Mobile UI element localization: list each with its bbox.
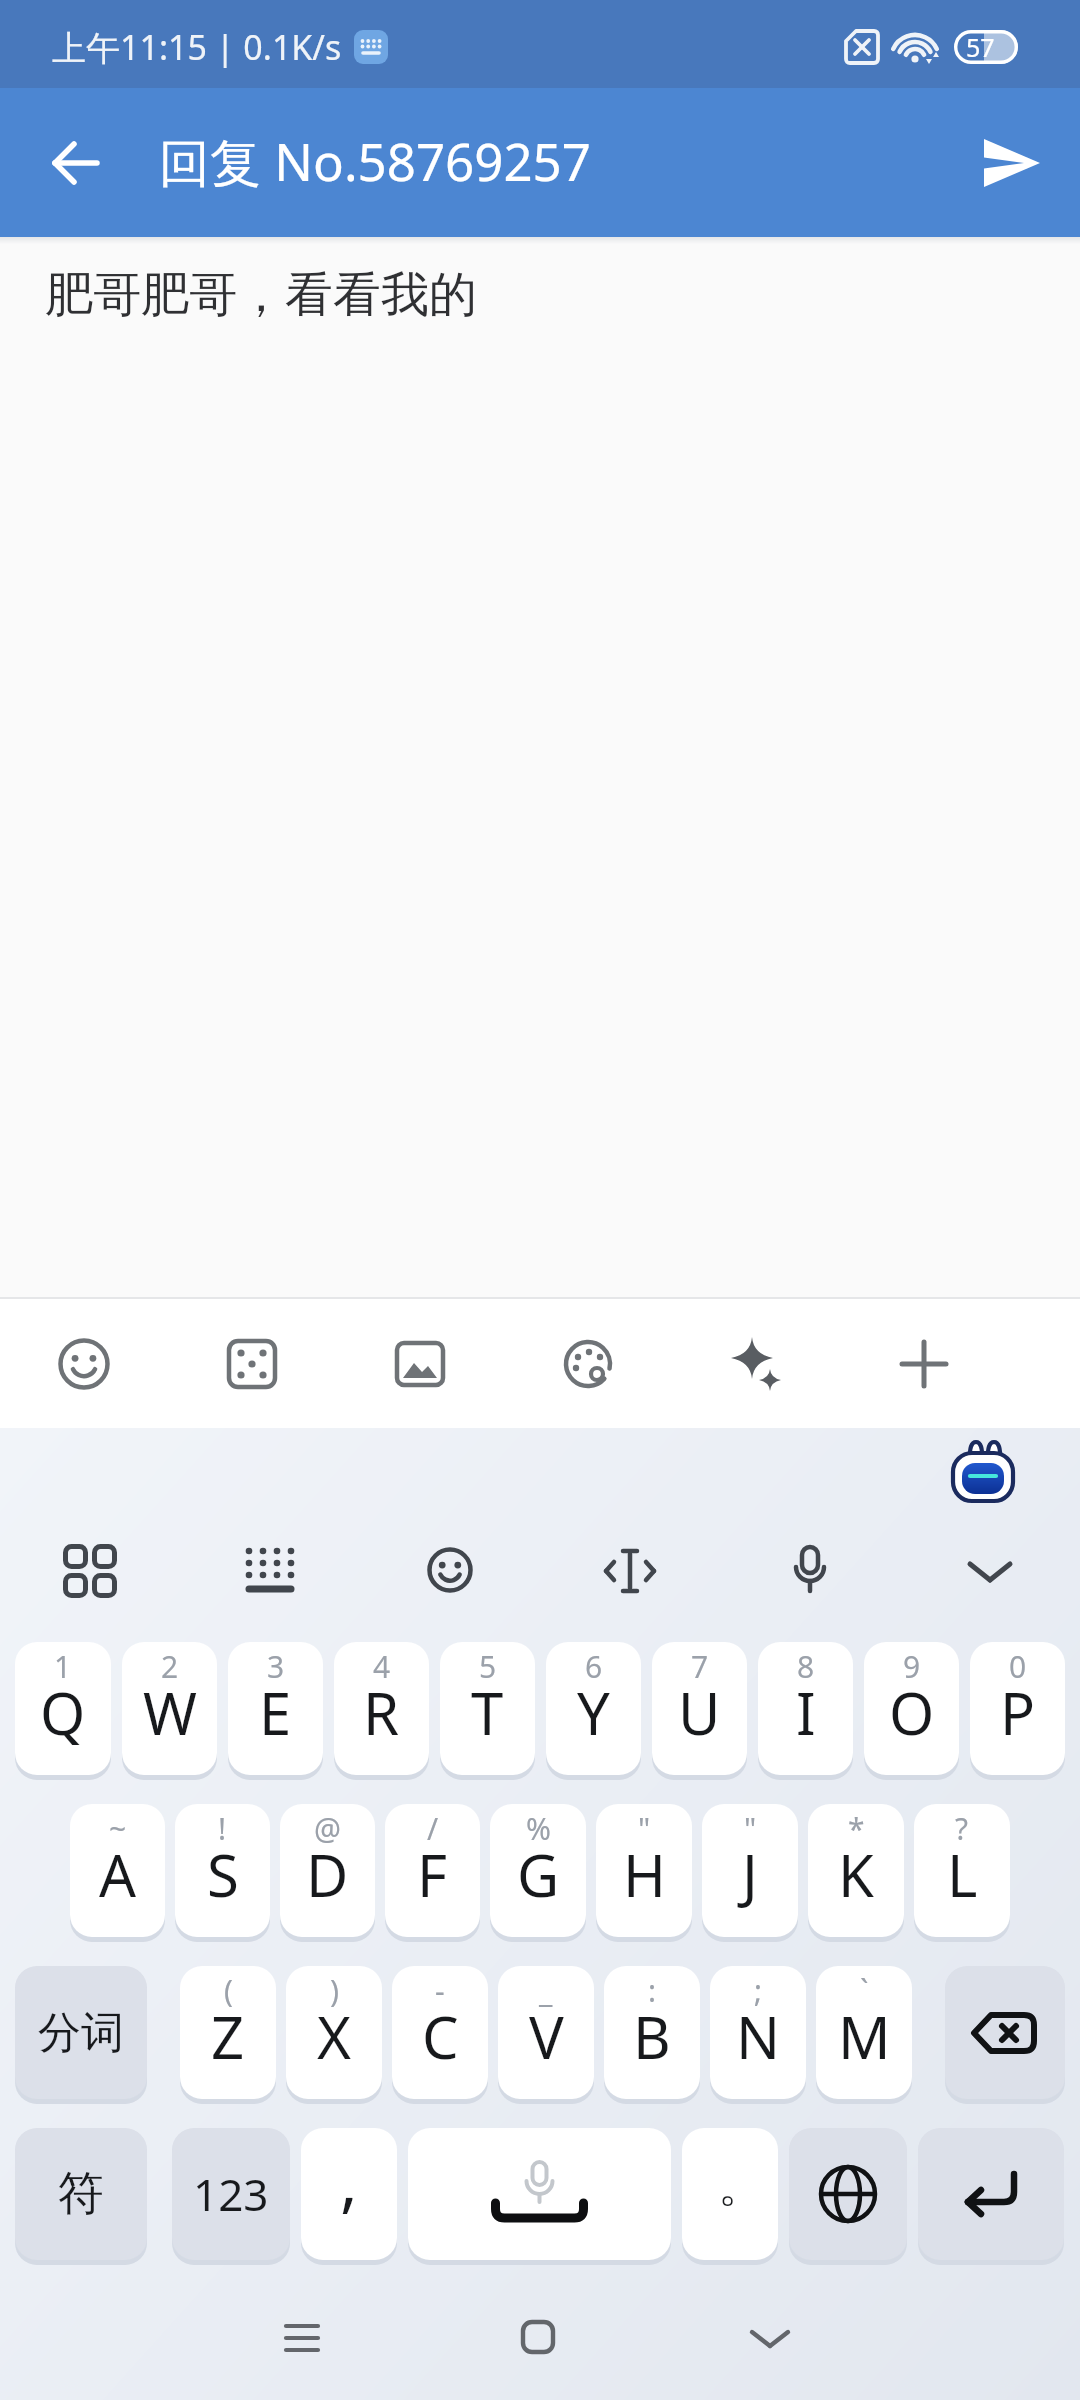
button[interactable]: / xyxy=(385,1804,480,1937)
staticText: X xyxy=(317,1997,351,2076)
staticText: A xyxy=(99,1835,137,1914)
staticText: : xyxy=(648,1970,657,2011)
staticText: P xyxy=(1000,1673,1036,1752)
button[interactable]: 7 xyxy=(652,1642,747,1775)
staticText: 5 xyxy=(479,1646,497,1687)
staticText: @ xyxy=(314,1808,341,1849)
button[interactable]: 123 xyxy=(172,2128,290,2260)
staticText: 。 xyxy=(718,2157,764,2215)
staticText: 7 xyxy=(691,1646,709,1687)
button[interactable]: ; xyxy=(710,1966,806,2099)
staticText: _ xyxy=(539,1970,553,2011)
staticText: 3 xyxy=(267,1646,285,1687)
button[interactable]: % xyxy=(490,1804,586,1937)
staticText: - xyxy=(435,1970,445,2011)
staticText: G xyxy=(517,1835,560,1914)
staticText: S xyxy=(207,1835,239,1914)
button[interactable]: ? xyxy=(914,1804,1010,1937)
button[interactable] xyxy=(918,2128,1064,2260)
button[interactable] xyxy=(789,2128,907,2260)
button[interactable]: - xyxy=(392,1966,488,2099)
button[interactable]: ( xyxy=(180,1966,276,2099)
button[interactable]: : xyxy=(604,1966,700,2099)
staticText: B xyxy=(633,1997,671,2076)
button[interactable]: 分词 xyxy=(15,1966,147,2099)
staticText: % xyxy=(526,1808,551,1849)
button[interactable]: @ xyxy=(280,1804,375,1937)
button[interactable] xyxy=(242,1545,298,1595)
button[interactable] xyxy=(602,1545,658,1595)
button[interactable]: 5 xyxy=(440,1642,535,1775)
staticText: R xyxy=(363,1673,400,1752)
staticText: 肥哥肥哥，看看我的 xyxy=(45,265,477,325)
button[interactable]: 1 xyxy=(15,1642,111,1775)
button[interactable] xyxy=(672,1299,840,1428)
staticText: 4 xyxy=(373,1646,391,1687)
staticText: O xyxy=(889,1673,935,1752)
staticText: E xyxy=(259,1673,292,1752)
button[interactable]: * xyxy=(808,1804,904,1937)
staticText: ) xyxy=(330,1970,339,2011)
staticText: ( xyxy=(224,1970,233,2011)
staticText: 57 xyxy=(966,30,995,64)
button[interactable]: 。 xyxy=(682,2128,778,2260)
staticText: ; xyxy=(754,1970,763,2011)
button[interactable]: ! xyxy=(175,1804,270,1937)
staticText: " xyxy=(744,1808,757,1849)
staticText: 6 xyxy=(585,1646,603,1687)
staticText: 分词 xyxy=(38,2006,124,2060)
button[interactable] xyxy=(62,1545,118,1595)
button[interactable] xyxy=(979,130,1045,196)
button[interactable] xyxy=(336,1299,504,1428)
staticText: K xyxy=(838,1835,874,1914)
staticText: 符 xyxy=(58,2165,104,2223)
button[interactable]: 9 xyxy=(864,1642,959,1775)
button[interactable] xyxy=(168,1299,336,1428)
staticText: Z xyxy=(211,1997,245,2076)
button[interactable]: ) xyxy=(286,1966,382,2099)
button[interactable] xyxy=(782,1545,838,1595)
staticText: Y xyxy=(577,1673,610,1752)
staticText: J xyxy=(742,1835,758,1914)
staticText: F xyxy=(417,1835,448,1914)
button[interactable] xyxy=(945,1966,1065,2099)
button[interactable]: 4 xyxy=(334,1642,429,1775)
button[interactable]: 6 xyxy=(546,1642,641,1775)
button[interactable] xyxy=(48,135,104,191)
staticText: ` xyxy=(860,1970,869,2011)
staticText: 2 xyxy=(161,1646,179,1687)
staticText: , xyxy=(340,2135,358,2225)
staticText: 0 xyxy=(1009,1646,1027,1687)
staticText: / xyxy=(427,1808,439,1849)
button[interactable]: ~ xyxy=(70,1804,165,1937)
staticText: Q xyxy=(40,1673,86,1752)
button[interactable]: 2 xyxy=(122,1642,217,1775)
staticText: 8 xyxy=(797,1646,815,1687)
button[interactable]: ` xyxy=(816,1966,912,2099)
button[interactable] xyxy=(422,1545,478,1595)
button[interactable] xyxy=(0,1299,168,1428)
button[interactable]: _ xyxy=(498,1966,594,2099)
button[interactable]: " xyxy=(596,1804,692,1937)
button[interactable]: 3 xyxy=(228,1642,323,1775)
button[interactable] xyxy=(504,1299,672,1428)
button[interactable]: , xyxy=(301,2128,397,2260)
staticText: 1 xyxy=(54,1646,72,1687)
button[interactable] xyxy=(408,2128,671,2260)
button[interactable]: 符 xyxy=(15,2128,147,2260)
staticText: T xyxy=(471,1673,504,1752)
button[interactable]: 8 xyxy=(758,1642,853,1775)
staticText: " xyxy=(638,1808,651,1849)
button[interactable] xyxy=(962,1545,1018,1595)
staticText: I xyxy=(796,1673,816,1752)
button[interactable] xyxy=(840,1299,1008,1428)
button[interactable] xyxy=(950,1436,1018,1504)
staticText: ! xyxy=(218,1808,227,1849)
button[interactable]: 0 xyxy=(970,1642,1065,1775)
button[interactable] xyxy=(521,2320,555,2354)
button[interactable]: " xyxy=(702,1804,798,1937)
staticText: U xyxy=(678,1673,721,1752)
button[interactable] xyxy=(750,2320,790,2356)
staticText: M xyxy=(838,1997,891,2076)
button[interactable] xyxy=(284,2320,320,2356)
